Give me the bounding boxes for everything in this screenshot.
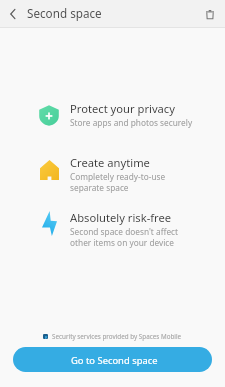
staticText: other items on your device	[70, 237, 175, 248]
button[interactable]: Delete	[199, 3, 221, 25]
staticText: Go to Second space	[71, 354, 158, 367]
staticText: Completely ready-to-use	[70, 171, 166, 182]
staticText: Security services provided by Spaces Mob…	[52, 332, 182, 341]
button[interactable]: Navigate up	[2, 3, 24, 25]
staticText: Second space	[27, 5, 102, 21]
staticText: Protect your privacy	[70, 101, 175, 116]
staticText: Store apps and photos securely	[70, 117, 193, 128]
button[interactable]: Go to Second space	[13, 347, 212, 372]
staticText: Absolutely risk-free	[70, 210, 172, 225]
staticText: separate space	[70, 182, 129, 193]
staticText: Create anytime	[70, 155, 150, 170]
staticText: Second space doesn't affect	[70, 226, 179, 237]
